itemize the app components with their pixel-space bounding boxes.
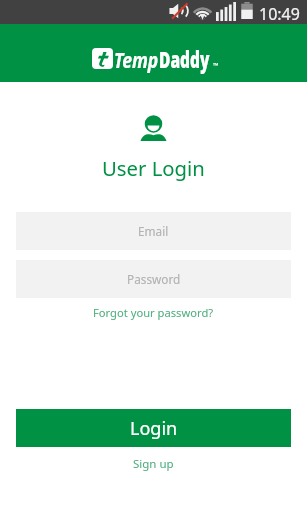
staticText: Forgot your password? (93, 305, 214, 320)
staticText: Email (138, 223, 169, 239)
button[interactable]: Forgot your password? (83, 302, 224, 323)
staticText: User Login (102, 154, 205, 182)
staticText: Login (130, 416, 178, 441)
staticText: Password (127, 271, 181, 287)
other: User avatar (140, 115, 167, 141)
other: Wi-Fi (190, 2, 215, 20)
staticText: Sign up (133, 456, 174, 472)
staticText: ™ (213, 61, 219, 71)
staticText: Daddy (159, 44, 210, 74)
other: Ringer muted (169, 3, 191, 19)
button[interactable]: Temp (92, 44, 247, 74)
staticText: 10:49 (259, 3, 300, 25)
button[interactable]: Sign up (123, 453, 184, 475)
button[interactable]: Password (16, 260, 291, 298)
button[interactable]: Email (16, 212, 291, 250)
other: Battery (241, 2, 253, 19)
staticText: Temp (114, 44, 159, 74)
other: Signal strength (216, 2, 236, 21)
button[interactable]: Login (16, 409, 291, 447)
